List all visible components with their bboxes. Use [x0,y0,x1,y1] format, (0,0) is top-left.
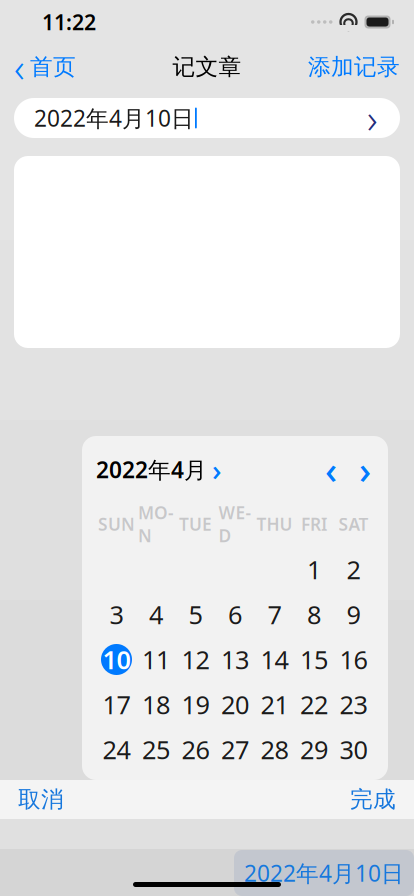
staticText: › [359,445,371,494]
staticText: SUN [98,512,135,535]
button[interactable]: 9 [334,592,373,637]
button[interactable]: 下个月 [348,454,382,484]
staticText: 12 [181,643,209,676]
staticText: TUE [179,512,212,535]
button[interactable]: 4 [136,592,176,637]
button[interactable]: 22 [294,682,334,727]
staticText: 6 [228,598,242,631]
button[interactable]: 6 [215,592,255,637]
staticText: 9 [346,598,360,631]
button[interactable]: 30 [334,727,373,772]
staticText: 25 [142,733,170,766]
button[interactable]: 8 [294,592,334,637]
button[interactable]: 11 [136,637,176,682]
staticText: WED [218,501,251,547]
button[interactable]: 20 [215,682,255,727]
button[interactable]: 取消 [0,778,64,821]
staticText: MON [138,501,174,547]
button[interactable]: 2 [334,547,373,592]
button[interactable]: 7 [255,592,294,637]
staticText: 27 [221,733,249,766]
button[interactable]: 23 [334,682,373,727]
staticText: 2022年4月10日 [34,103,194,133]
staticText: › [212,450,222,489]
staticText: 22 [300,688,328,721]
staticText: 23 [339,688,367,721]
button[interactable]: 添加记录 [308,47,414,87]
button[interactable]: 19 [176,682,215,727]
staticText: 14 [260,643,288,676]
staticText: 记文章 [172,53,241,81]
button[interactable]: 18 [136,682,176,727]
staticText: 26 [181,733,209,766]
staticText: 2022年4月10日 [244,858,404,888]
button[interactable]: 14 [255,637,294,682]
button[interactable]: ‹ [0,34,76,99]
button[interactable]: 21 [255,682,294,727]
staticText: THU [256,512,292,535]
button[interactable]: 1 [294,547,334,592]
staticText: 15 [300,643,328,676]
button[interactable]: 24 [97,727,136,772]
staticText: 11 [142,643,170,676]
staticText: 8 [307,598,321,631]
button[interactable]: 12 [176,637,215,682]
staticText: 3 [109,598,123,631]
button[interactable]: 13 [215,637,255,682]
button[interactable]: 16 [334,637,373,682]
staticText: 1 [307,553,321,586]
staticText: 30 [339,733,367,766]
button[interactable]: 5 [176,592,215,637]
button[interactable]: 完成 [350,778,414,821]
staticText: ‹ [14,40,25,93]
staticText: 首页 [30,53,76,81]
staticText: 13 [221,643,249,676]
button[interactable]: 10 [97,637,136,682]
button[interactable]: 17 [97,682,136,727]
staticText: FRI [301,512,327,535]
staticText: 17 [102,688,130,721]
staticText: 4 [149,598,163,631]
button[interactable]: 26 [176,727,215,772]
staticText: ‹ [325,445,337,494]
staticText: 24 [102,733,130,766]
button[interactable]: 2022年4月10日 [234,850,414,896]
button[interactable]: 29 [294,727,334,772]
staticText: 11:22 [42,8,96,36]
staticText: 5 [188,598,202,631]
staticText: › [367,91,378,144]
button[interactable]: 28 [255,727,294,772]
button[interactable]: 2022年4月 [96,448,222,491]
staticText: 20 [221,688,249,721]
staticText: 18 [142,688,170,721]
staticText: 7 [267,598,281,631]
staticText: 添加记录 [308,53,400,81]
staticText: 29 [300,733,328,766]
button[interactable]: 2022年4月10日 [14,98,400,138]
button[interactable]: 25 [136,727,176,772]
staticText: 完成 [350,786,396,813]
staticText: 2 [346,553,360,586]
staticText: 16 [339,643,367,676]
staticText: 21 [260,688,288,721]
button[interactable]: 3 [97,592,136,637]
staticText: 取消 [18,786,64,813]
staticText: 10 [102,643,130,676]
staticText: 2022年4月 [96,454,207,484]
staticText: 28 [260,733,288,766]
button[interactable]: 15 [294,637,334,682]
staticText: 19 [181,688,209,721]
button[interactable]: 上个月 [314,454,348,484]
button[interactable]: 27 [215,727,255,772]
staticText: SAT [338,512,368,535]
